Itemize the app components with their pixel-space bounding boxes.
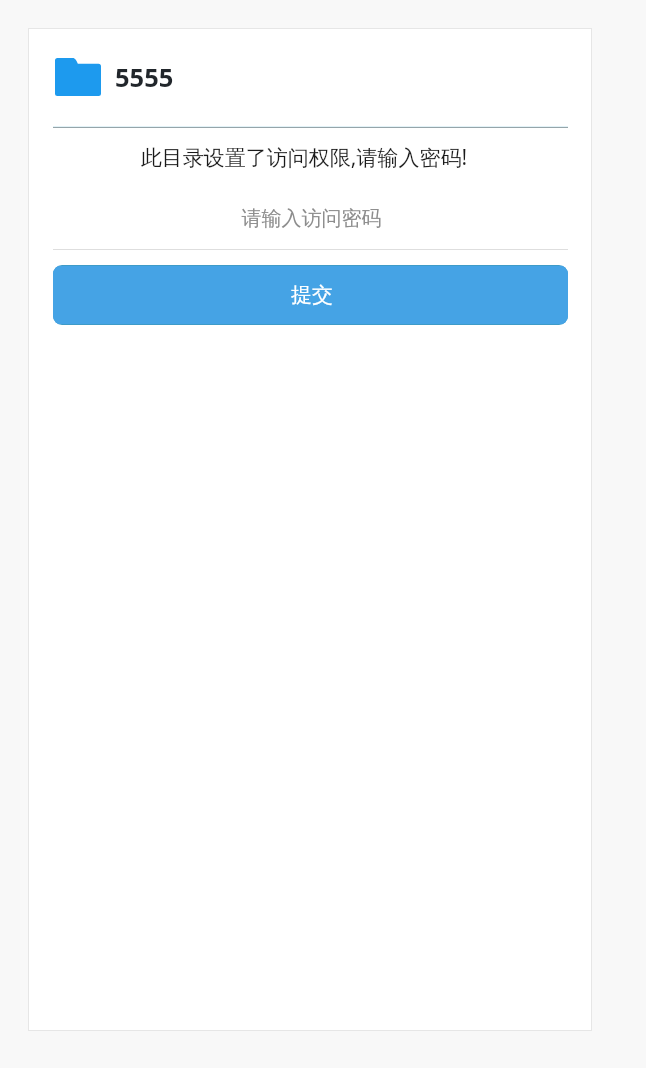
- button[interactable]: 提交: [53, 266, 568, 324]
- staticText: 此目录设置了访问权限,请输入密码!: [23, 143, 585, 172]
- other: Folder: [55, 58, 101, 96]
- staticText: 提交: [291, 282, 333, 308]
- button[interactable]: 请输入访问密码: [53, 195, 568, 250]
- staticText: 5555: [115, 60, 174, 95]
- button[interactable]: Folder: [53, 49, 568, 109]
- staticText: 请输入访问密码: [54, 206, 569, 231]
